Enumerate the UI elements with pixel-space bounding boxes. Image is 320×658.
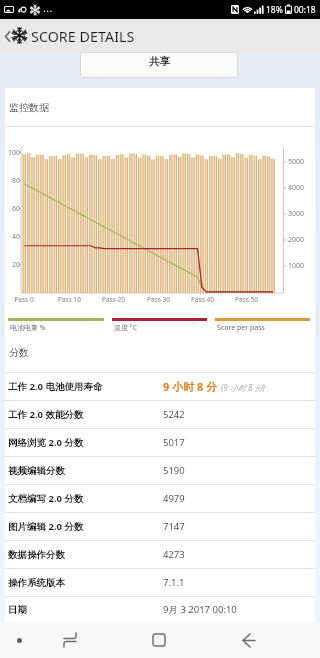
staticText: Pass 50: [235, 295, 258, 304]
button[interactable]: 图片编辑 2.0 分数: [5, 513, 315, 540]
staticText: 监控数据: [9, 101, 49, 114]
staticText: Score per pass: [217, 323, 265, 332]
staticText: 网络浏览 2.0 分数: [8, 436, 84, 449]
staticText: 40: [11, 232, 20, 242]
staticText: 5190: [163, 464, 185, 477]
button[interactable]: Home: [136, 622, 181, 658]
staticText: 共享: [149, 55, 170, 68]
staticText: 5242: [163, 408, 185, 421]
button[interactable]: 共享: [80, 52, 238, 78]
staticText: 18%: [266, 4, 283, 16]
staticText: 温度 °C: [114, 323, 138, 332]
staticText: 电池电量 %: [10, 323, 46, 332]
staticText: 5000: [288, 157, 305, 167]
button[interactable]: 日期: [5, 597, 315, 622]
staticText: 4979: [163, 492, 185, 505]
staticText: (9 小时 8 分): [221, 382, 265, 393]
staticText: Pass 0: [14, 295, 34, 304]
staticText: Pass 30: [147, 295, 170, 304]
staticText: 文档编写 2.0 分数: [8, 492, 84, 505]
staticText: Pass 10: [58, 295, 81, 304]
button[interactable]: 工作 2.0 电池使用寿命: [5, 373, 315, 400]
staticText: 3000: [288, 209, 305, 219]
button[interactable]: 数据操作分数: [5, 541, 315, 568]
staticText: SCORE DETAILS: [31, 27, 135, 46]
staticText: 5017: [163, 436, 185, 449]
staticText: 1000: [288, 261, 305, 271]
staticText: 数据操作分数: [8, 549, 65, 561]
staticText: 9 小时 8 分: [163, 379, 218, 394]
staticText: 4273: [163, 548, 185, 561]
staticText: 分数: [9, 346, 29, 359]
staticText: 60: [11, 204, 20, 214]
button[interactable]: 视频编辑分数: [5, 457, 315, 484]
staticText: 工作 2.0 电池使用寿命: [8, 380, 103, 393]
button[interactable]: Back: [226, 622, 271, 658]
staticText: 80: [11, 176, 20, 186]
staticText: 操作系统版本: [8, 577, 65, 589]
staticText: 100: [7, 148, 20, 158]
button[interactable]: Back: [2, 26, 12, 46]
staticText: 图片编辑 2.0 分数: [8, 520, 84, 533]
staticText: 00:18: [294, 4, 316, 16]
staticText: 20: [11, 260, 20, 270]
staticText: Pass 20: [102, 295, 125, 304]
staticText: 工作 2.0 效能分数: [8, 408, 84, 421]
button[interactable]: 网络浏览 2.0 分数: [5, 429, 315, 456]
button[interactable]: 文档编写 2.0 分数: [5, 485, 315, 512]
staticText: 9月 3 2017 00:10: [163, 603, 237, 616]
button[interactable]: Show navigation buttons: [4, 622, 34, 658]
staticText: 7147: [163, 520, 185, 533]
staticText: 日期: [8, 604, 27, 616]
staticText: 2000: [288, 235, 305, 245]
staticText: 4000: [288, 183, 305, 193]
button[interactable]: 操作系统版本: [5, 569, 315, 596]
staticText: Pass 40: [191, 295, 214, 304]
button[interactable]: 工作 2.0 效能分数: [5, 401, 315, 428]
button[interactable]: Recents: [47, 622, 92, 658]
staticText: 7.1.1: [163, 576, 185, 589]
staticText: 视频编辑分数: [8, 465, 65, 477]
